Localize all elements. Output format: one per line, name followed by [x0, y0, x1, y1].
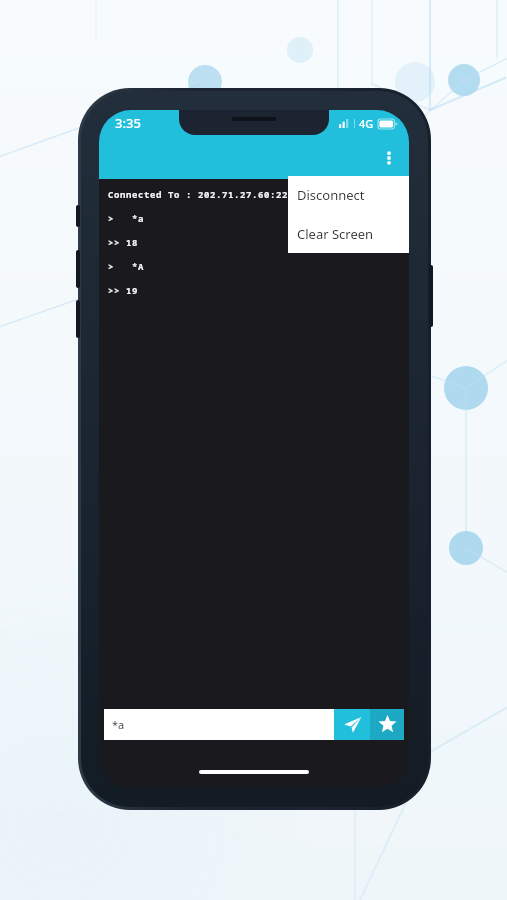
button[interactable]: *a: [104, 709, 334, 740]
staticText: > *a: [108, 212, 145, 224]
staticText: Disconnect: [297, 186, 365, 204]
staticText: *a: [112, 717, 125, 732]
staticText: Connected To : 202.71.27.60:2232: [108, 188, 301, 200]
staticText: 3:35: [115, 114, 141, 132]
staticText: >> 18: [108, 236, 139, 248]
button[interactable]: More options: [369, 138, 409, 178]
staticText: Clear Screen: [297, 225, 374, 243]
button[interactable]: Send: [334, 709, 370, 740]
staticText: > *A: [108, 260, 145, 272]
button[interactable]: Clear Screen: [288, 214, 409, 253]
button[interactable]: Favorite: [370, 709, 404, 740]
staticText: >> 19: [108, 284, 139, 296]
button[interactable]: Disconnect: [288, 176, 409, 214]
staticText: 4G: [359, 116, 374, 131]
